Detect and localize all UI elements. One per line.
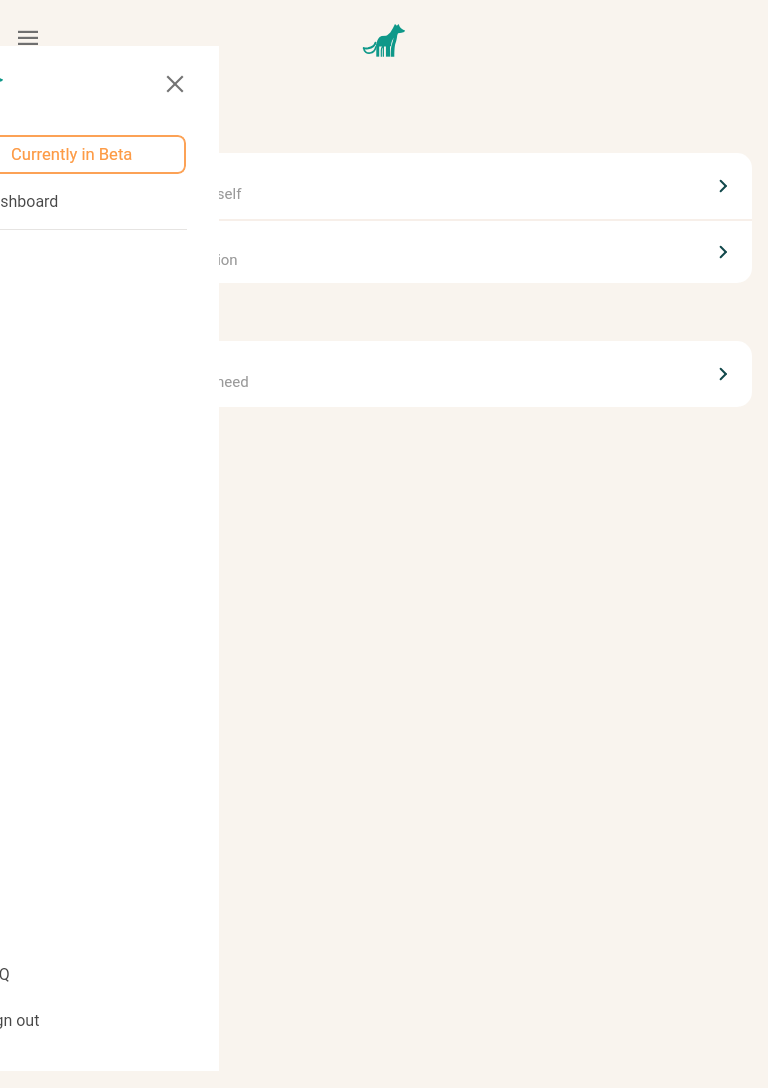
staticText: Anything else you need	[95, 373, 249, 391]
button[interactable]: Open navigation menu	[8, 19, 48, 55]
staticText: Identity verification	[111, 251, 238, 269]
button[interactable]: Currently in Beta	[0, 135, 186, 174]
button[interactable]: Close navigation menu	[157, 66, 193, 102]
staticText: Currently in Beta	[11, 145, 133, 164]
button[interactable]: Sign out	[0, 997, 219, 1043]
button[interactable]: Identity verification	[16, 221, 752, 283]
staticText: Sign out	[0, 1011, 40, 1030]
button[interactable]: Dashboard	[0, 178, 219, 224]
button[interactable]: Tell us about yourself	[16, 153, 752, 219]
staticText: Dashboard	[0, 192, 59, 211]
staticText: Tell us about yourself	[99, 185, 242, 203]
button[interactable]: Anything else you need	[16, 341, 752, 407]
button[interactable]: FAQ	[0, 951, 219, 997]
staticText: FAQ	[0, 965, 10, 984]
